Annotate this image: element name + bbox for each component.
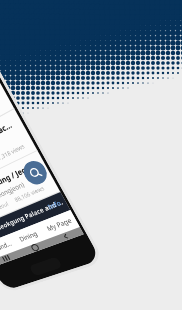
button[interactable]: Info (46, 198, 64, 212)
staticText: My Page (45, 216, 74, 234)
button[interactable]: Back (48, 227, 84, 246)
button[interactable]: Korean Traditional Music Concert ... (0, 66, 14, 154)
button[interactable]: Search (19, 157, 51, 188)
button[interactable]: Changdeokgung / Jeongjeon (0, 151, 60, 228)
button[interactable]: Home (18, 239, 52, 256)
other: Home (28, 256, 63, 277)
staticText: Changdeokgung Palace [UNESCO] (0, 117, 17, 166)
staticText: Around... (0, 239, 14, 256)
staticText: Info (46, 198, 64, 212)
staticText: Jongno-gu, Seoul 88,106 views (0, 184, 47, 222)
button[interactable]: My Page (39, 210, 80, 239)
button[interactable]: Recent apps (0, 250, 22, 266)
staticText: Jongno-gu, Seoul 347,318 views (0, 142, 26, 185)
button[interactable]: Changdeokgung Palace [UNESCO] (0, 109, 37, 191)
staticText: (A.k.a. Jeongjeongjeon) (0, 180, 27, 214)
button[interactable]: Dining (9, 222, 48, 250)
staticText: Changdeokgung Palace and ... (0, 198, 65, 239)
staticText: Dining (18, 229, 40, 244)
button[interactable]: Around... (0, 234, 18, 260)
staticText: Changdeokgung / Jeongjeon (0, 158, 40, 203)
